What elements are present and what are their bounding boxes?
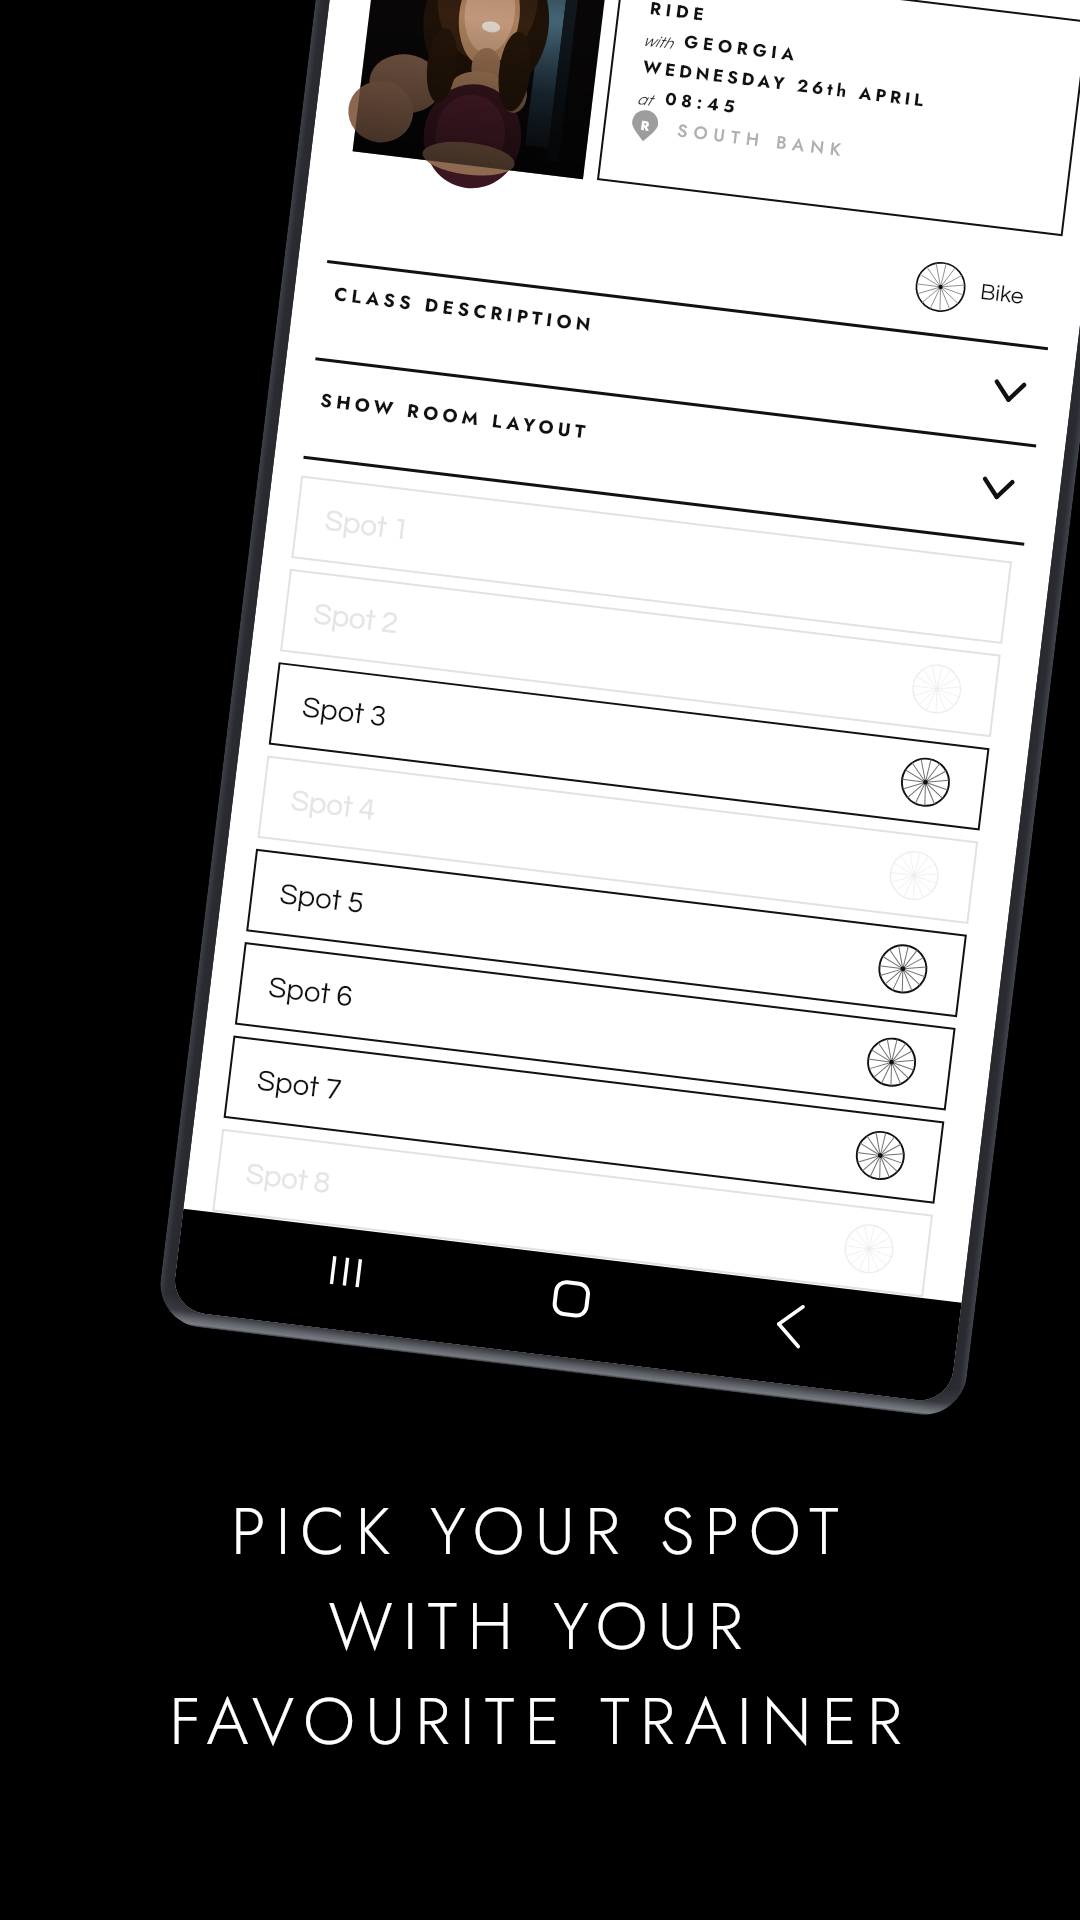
button[interactable]: RIDE: [597, 0, 1080, 236]
staticText: Spot 3: [301, 692, 389, 732]
staticText: WITH YOUR: [328, 1578, 753, 1673]
button[interactable]: Spot 6: [235, 942, 956, 1110]
button[interactable]: Back: [755, 1291, 824, 1360]
staticText: RIDE: [648, 0, 710, 27]
staticText: Spot 7: [255, 1066, 343, 1106]
staticText: 08:45: [664, 86, 741, 119]
staticText: Bike: [979, 280, 1025, 309]
staticText: Spot 1: [323, 506, 411, 546]
button[interactable]: Spot 9: [201, 1222, 922, 1390]
staticText: Spot 6: [267, 972, 355, 1012]
staticText: FAVOURITE TRAINER: [169, 1673, 912, 1768]
button[interactable]: Bike: [913, 259, 1027, 322]
staticText: WEDNESDAY 26th APRIL: [641, 54, 929, 113]
button[interactable]: Spot 5: [246, 849, 967, 1017]
button[interactable]: Expand: [992, 379, 1027, 404]
staticText: PICK YOUR SPOT: [231, 1483, 849, 1578]
staticText: Spot 4: [289, 786, 377, 826]
staticText: SOUTH BANK: [676, 117, 849, 163]
button[interactable]: Spot 3: [269, 662, 989, 830]
staticText: Spot 2: [312, 599, 400, 639]
button[interactable]: Expand: [981, 476, 1015, 501]
button[interactable]: Trainer photo, Georgia: [353, 0, 615, 179]
staticText: Spot 5: [278, 879, 366, 919]
button[interactable]: CLASS DESCRIPTION: [318, 247, 1040, 423]
staticText: GEORGIA: [683, 28, 801, 67]
staticText: SHOW ROOM LAYOUT: [319, 386, 591, 446]
staticText: CLASS DESCRIPTION: [333, 280, 597, 339]
button[interactable]: SHOW ROOM LAYOUT: [304, 353, 1026, 529]
staticText: R: [640, 116, 651, 136]
button[interactable]: Spot 2: [280, 569, 1001, 737]
button[interactable]: Spot 1: [291, 475, 1012, 644]
button[interactable]: Spot 7: [224, 1035, 944, 1204]
staticText: with: [642, 32, 674, 52]
staticText: at: [636, 91, 653, 109]
button[interactable]: Home: [537, 1264, 606, 1333]
button[interactable]: Spot 8: [212, 1129, 933, 1297]
button[interactable]: Spot 4: [257, 755, 978, 924]
button[interactable]: Recent apps: [311, 1237, 380, 1306]
staticText: Spot 8: [244, 1159, 332, 1199]
